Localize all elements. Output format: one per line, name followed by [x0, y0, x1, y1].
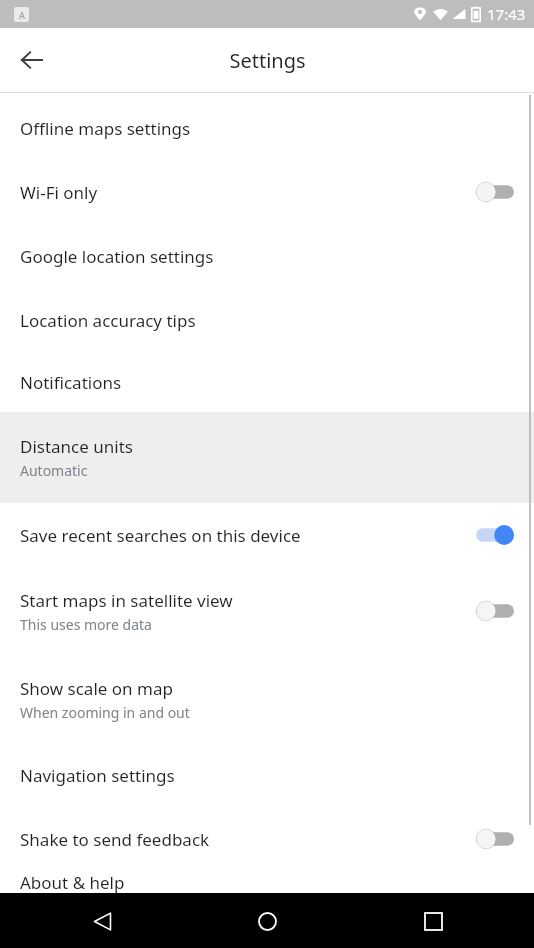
- staticText: Settings: [229, 47, 306, 74]
- button[interactable]: Show scale on map: [0, 655, 534, 743]
- button[interactable]: Notifications: [0, 352, 534, 412]
- button[interactable]: Start maps in satellite view: [0, 567, 534, 655]
- button[interactable]: Google location settings: [0, 224, 534, 288]
- button[interactable]: Navigation settings: [0, 743, 534, 807]
- staticText: 17:43: [487, 4, 526, 24]
- staticText: Offline maps settings: [20, 117, 191, 140]
- staticText: Shake to send feedback: [20, 828, 210, 851]
- button[interactable]: Home: [243, 897, 291, 945]
- staticText: A: [19, 9, 25, 21]
- button[interactable]: Wi-Fi only: [0, 160, 534, 224]
- button[interactable]: Shake to send feedback: [0, 807, 534, 871]
- staticText: Google location settings: [20, 245, 214, 268]
- staticText: This uses more data: [20, 615, 152, 634]
- button[interactable]: Back: [8, 36, 56, 84]
- staticText: Automatic: [20, 461, 88, 480]
- staticText: Save recent searches on this device: [20, 524, 301, 547]
- staticText: Distance units: [20, 435, 133, 458]
- staticText: Notifications: [20, 371, 122, 394]
- button[interactable]: About & help: [0, 871, 534, 893]
- staticText: Start maps in satellite view: [20, 589, 233, 612]
- button[interactable]: Distance units: [0, 412, 534, 503]
- staticText: Wi-Fi only: [20, 181, 98, 204]
- staticText: When zooming in and out: [20, 703, 190, 722]
- button[interactable]: Recent apps: [409, 897, 457, 945]
- button[interactable]: Back: [78, 897, 126, 945]
- button[interactable]: Offline maps settings: [0, 96, 534, 160]
- button[interactable]: Save recent searches on this device: [0, 503, 534, 567]
- staticText: Location accuracy tips: [20, 309, 196, 332]
- staticText: Navigation settings: [20, 764, 175, 787]
- button[interactable]: Location accuracy tips: [0, 288, 534, 352]
- staticText: About & help: [20, 871, 125, 893]
- staticText: Show scale on map: [20, 677, 173, 700]
